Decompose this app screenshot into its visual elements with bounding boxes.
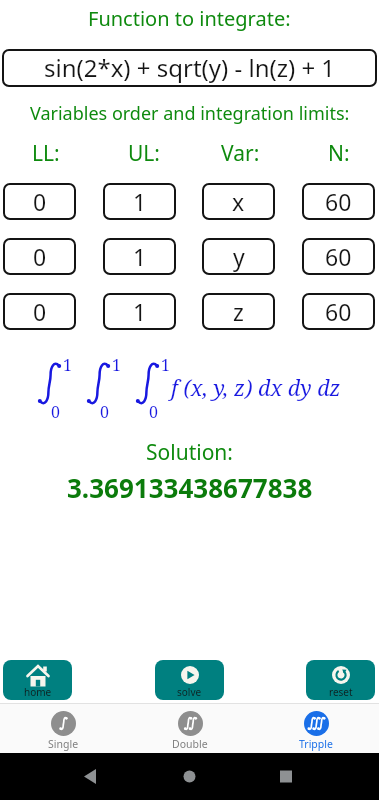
staticText: 0 (100, 401, 109, 423)
button[interactable]: z (202, 293, 275, 330)
button[interactable]: 1 (103, 183, 176, 220)
button[interactable]: x (202, 183, 275, 220)
button[interactable]: 0 (3, 183, 76, 220)
staticText: z (233, 296, 244, 327)
button[interactable]: y (202, 238, 275, 275)
staticText: Double (172, 737, 208, 751)
staticText: 0 (33, 296, 47, 327)
staticText: 1 (63, 354, 72, 376)
staticText: 1 (133, 296, 147, 327)
staticText: reset (329, 685, 353, 699)
button[interactable]: 1 (103, 238, 176, 275)
button[interactable]: home (3, 660, 72, 700)
staticText: 0 (33, 186, 47, 217)
button[interactable]: Single (0, 704, 127, 753)
staticText: f (x, y, z) dx dy dz (171, 373, 341, 402)
staticText: solve (177, 685, 202, 699)
staticText: Function to integrate: (88, 5, 291, 32)
staticText: 1 (133, 241, 147, 272)
staticText: 60 (325, 296, 352, 327)
button[interactable]: Double (127, 704, 253, 753)
button[interactable]: 1 (103, 293, 176, 330)
button[interactable]: solve (155, 660, 224, 700)
staticText: 0 (51, 401, 60, 423)
staticText: y (233, 241, 245, 272)
staticText: Tripple (299, 737, 333, 751)
staticText: x (232, 186, 245, 217)
button[interactable]: 0 (3, 293, 76, 330)
staticText: Var: (221, 139, 260, 168)
staticText: Solution: (146, 438, 233, 467)
staticText: LL: (32, 139, 60, 168)
staticText: N: (328, 139, 350, 168)
staticText: 0 (149, 401, 158, 423)
staticText: 1 (161, 354, 170, 376)
button[interactable]: sin(2*x) + sqrt(y) - ln(z) + 1 (2, 49, 377, 87)
staticText: 0 (33, 241, 47, 272)
staticText: home (24, 685, 52, 699)
staticText: UL: (128, 139, 160, 168)
button[interactable]: 60 (302, 183, 375, 220)
button[interactable]: 60 (302, 293, 375, 330)
button[interactable]: 0 (3, 238, 76, 275)
staticText: 1 (133, 186, 147, 217)
staticText: Variables order and integration limits: (30, 101, 350, 126)
staticText: 60 (325, 186, 352, 217)
staticText: 3.369133438677838 (67, 470, 313, 505)
staticText: sin(2*x) + sqrt(y) - ln(z) + 1 (44, 51, 336, 84)
button[interactable]: Tripple (253, 704, 379, 753)
button[interactable]: reset (306, 660, 375, 700)
staticText: 1 (112, 354, 121, 376)
button[interactable]: 60 (302, 238, 375, 275)
staticText: Single (48, 737, 79, 751)
staticText: 60 (325, 241, 352, 272)
